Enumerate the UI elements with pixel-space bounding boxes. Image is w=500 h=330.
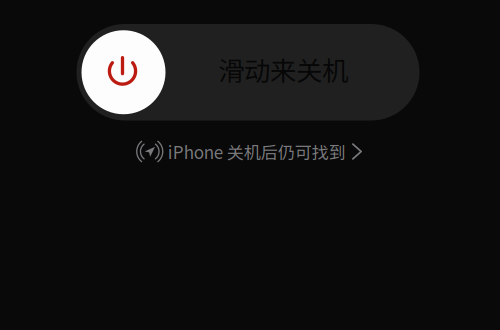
- button[interactable]: 滑动来关机: [76, 24, 419, 120]
- staticText: 滑动来关机: [218, 50, 348, 88]
- button[interactable]: iPhone 关机后仍可找到: [137, 140, 363, 164]
- staticText: iPhone 关机后仍可找到: [168, 139, 346, 164]
